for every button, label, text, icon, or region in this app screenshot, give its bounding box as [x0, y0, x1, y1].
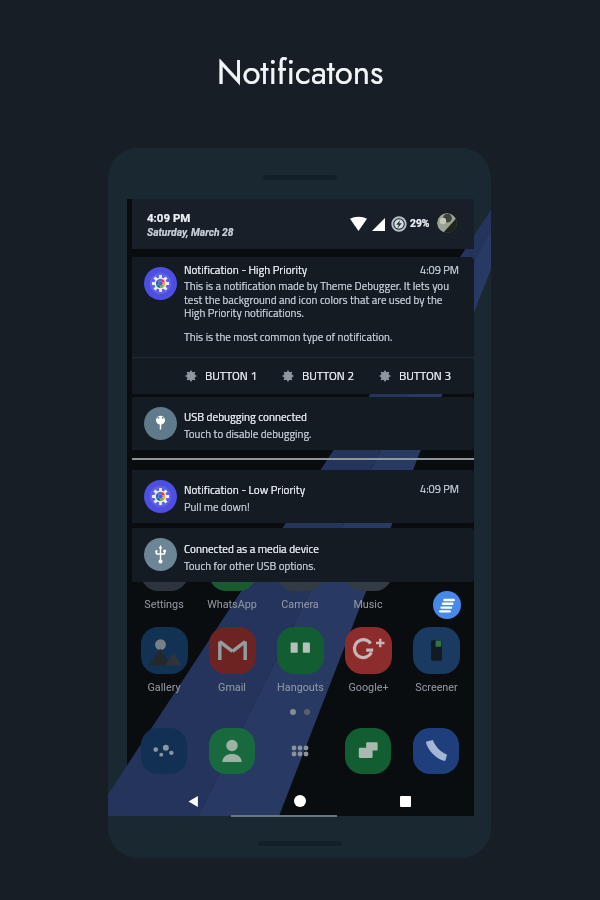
staticText: Notificatons: [217, 49, 384, 97]
staticText: Notification - High Priority: [184, 261, 308, 278]
button[interactable]: Phone: [413, 728, 459, 774]
staticText: This is the most common type of notifica…: [184, 329, 393, 346]
button[interactable]: Connected as a media device: [132, 528, 474, 582]
button[interactable]: Gmail: [199, 627, 265, 694]
staticText: Notification - Low Priority: [184, 481, 306, 498]
button[interactable]: Notification - High Priority: [132, 257, 474, 394]
button[interactable]: Gallery: [131, 627, 197, 694]
staticText: 4:09 PM: [147, 211, 191, 224]
button[interactable]: All apps: [277, 728, 323, 774]
staticText: Music: [353, 598, 383, 611]
staticText: Google+: [348, 681, 389, 694]
button[interactable]: Music: [335, 544, 401, 611]
staticText: This is a notification made by Theme Deb…: [184, 278, 456, 321]
staticText: Touch to disable debugging.: [184, 426, 312, 443]
button[interactable]: Contacts: [209, 728, 255, 774]
staticText: Hangouts: [277, 681, 324, 694]
staticText: BUTTON 2: [302, 367, 355, 385]
staticText: Pull me down!: [184, 499, 250, 516]
staticText: Gallery: [147, 681, 181, 694]
button[interactable]: Settings: [131, 544, 197, 611]
button[interactable]: Google+: [335, 627, 401, 694]
button[interactable]: Camera: [267, 544, 333, 611]
staticText: Saturday, March 28: [147, 226, 234, 238]
staticText: BUTTON 3: [399, 367, 452, 385]
button[interactable]: Screener shortcut: [433, 591, 461, 619]
button[interactable]: Screener: [403, 627, 469, 694]
button[interactable]: Recent apps: [383, 788, 427, 814]
staticText: Gmail: [218, 681, 246, 694]
staticText: WhatsApp: [207, 598, 257, 611]
button[interactable]: BUTTON 3: [379, 367, 452, 385]
staticText: BUTTON 1: [205, 367, 258, 385]
staticText: Screener: [415, 681, 458, 694]
button[interactable]: Back: [171, 788, 215, 814]
button[interactable]: BUTTON 1: [185, 367, 258, 385]
button[interactable]: Home: [278, 788, 322, 814]
staticText: Settings: [144, 598, 184, 611]
staticText: Connected as a media device: [184, 540, 319, 557]
button[interactable]: WhatsApp: [199, 544, 265, 611]
button[interactable]: BUTTON 2: [282, 367, 355, 385]
staticText: Touch for other USB options.: [184, 558, 316, 575]
staticText: 4:09 PM: [420, 262, 460, 279]
button[interactable]: USB debugging connected: [132, 397, 474, 450]
button[interactable]: Messages: [345, 728, 391, 774]
staticText: 4:09 PM: [420, 481, 460, 498]
button[interactable]: Maps: [141, 728, 187, 774]
staticText: USB debugging connected: [184, 408, 307, 425]
staticText: Camera: [281, 598, 319, 611]
button[interactable]: Notification - Low Priority: [132, 470, 474, 523]
staticText: 29%: [410, 217, 430, 229]
button[interactable]: Hangouts: [267, 627, 333, 694]
